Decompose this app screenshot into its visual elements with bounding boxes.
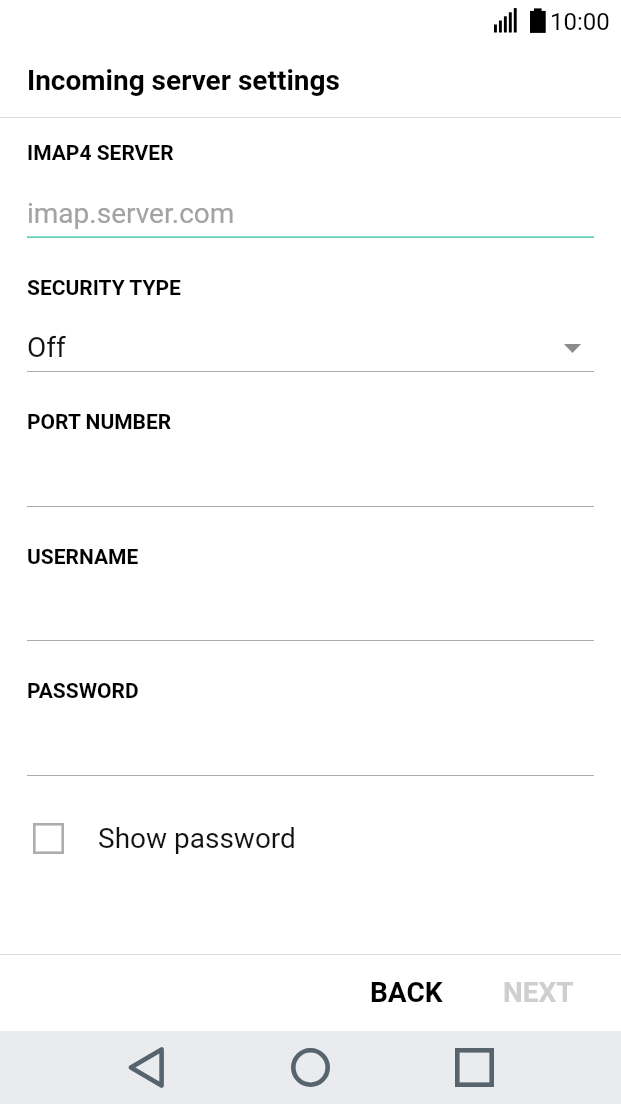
staticText: PASSWORD bbox=[27, 679, 139, 704]
button[interactable]: PASSWORD bbox=[27, 670, 594, 777]
button[interactable]: PORT NUMBER bbox=[27, 401, 594, 508]
staticText: PORT NUMBER bbox=[27, 410, 172, 435]
staticText: IMAP4 SERVER bbox=[27, 141, 174, 166]
button[interactable]: Recent apps bbox=[393, 1031, 557, 1104]
staticText: BACK bbox=[370, 976, 443, 1009]
staticText: USERNAME bbox=[27, 545, 139, 570]
staticText: Off bbox=[27, 331, 66, 364]
button[interactable]: NEXT bbox=[489, 964, 588, 1021]
button[interactable]: IMAP4 SERVER bbox=[27, 132, 594, 239]
staticText: 10:00 bbox=[550, 8, 610, 36]
staticText: NEXT bbox=[503, 976, 574, 1009]
staticText: Show password bbox=[98, 822, 296, 855]
button[interactable]: Home bbox=[229, 1031, 393, 1104]
button[interactable]: USERNAME bbox=[27, 536, 594, 643]
button[interactable]: Show password bbox=[0, 807, 621, 869]
button[interactable]: BACK bbox=[356, 964, 457, 1021]
staticText: Incoming server settings bbox=[27, 64, 340, 97]
staticText: imap.server.com bbox=[27, 197, 235, 230]
staticText: SECURITY TYPE bbox=[27, 276, 181, 301]
button[interactable]: SECURITY TYPE bbox=[27, 266, 594, 372]
button[interactable]: Back bbox=[65, 1031, 229, 1104]
